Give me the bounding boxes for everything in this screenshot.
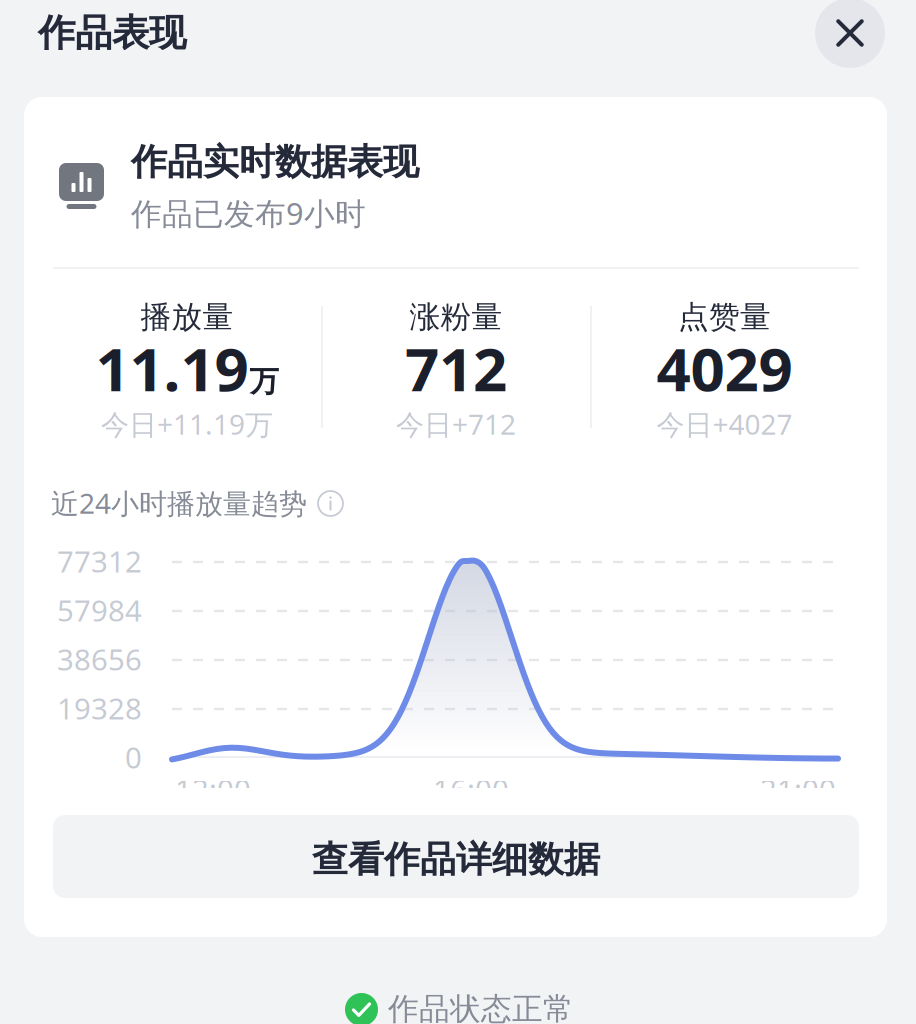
staticText: 今日+4027	[656, 405, 792, 443]
staticText: 作品表现	[38, 10, 186, 56]
staticText: 11.19	[95, 328, 248, 408]
staticText: 播放量	[140, 298, 233, 336]
staticText: 作品已发布9小时	[131, 193, 366, 233]
staticText: 涨粉量	[409, 298, 502, 336]
staticText: 712	[405, 328, 507, 408]
button[interactable]: 查看作品详细数据	[53, 815, 859, 898]
staticText: 16:00	[433, 769, 509, 808]
staticText: 4029	[656, 328, 792, 408]
staticText: 作品状态正常	[388, 990, 574, 1024]
staticText: 12:00	[175, 769, 251, 808]
staticText: 作品实时数据表现	[131, 140, 419, 184]
staticText: 38656	[57, 639, 142, 678]
staticText: 点赞量	[678, 298, 771, 336]
staticText: 今日+11.19万	[101, 405, 273, 443]
staticText: 57984	[57, 590, 142, 629]
staticText: 0	[125, 737, 142, 776]
staticText: 19328	[57, 688, 142, 727]
staticText: 77312	[57, 541, 142, 580]
button[interactable]: Close	[815, 0, 885, 68]
staticText: 近24小时播放量趋势	[51, 484, 307, 522]
staticText: 查看作品详细数据	[312, 837, 600, 882]
staticText: 21:00	[760, 769, 836, 808]
staticText: 今日+712	[396, 405, 516, 443]
staticText: 万	[249, 363, 278, 399]
